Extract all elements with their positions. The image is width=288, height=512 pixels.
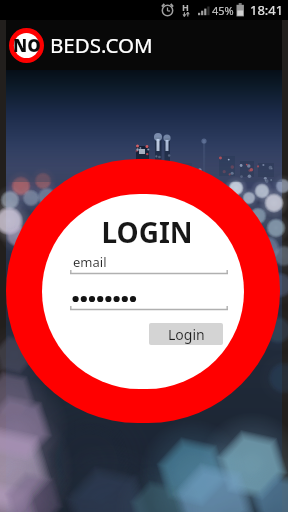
button[interactable]: email [70, 253, 228, 275]
staticText: 18:41 [250, 1, 284, 19]
staticText: BEDS.COM [50, 31, 153, 59]
staticText: H [182, 1, 189, 13]
button[interactable] [70, 289, 228, 311]
button[interactable]: Login [149, 323, 223, 345]
staticText: email [73, 253, 107, 271]
staticText: Login [168, 325, 205, 344]
other: NO BEDS logo [9, 28, 44, 63]
staticText: LOGIN [3, 213, 288, 251]
staticText: 45% [212, 3, 234, 18]
staticText: NO [13, 34, 41, 57]
